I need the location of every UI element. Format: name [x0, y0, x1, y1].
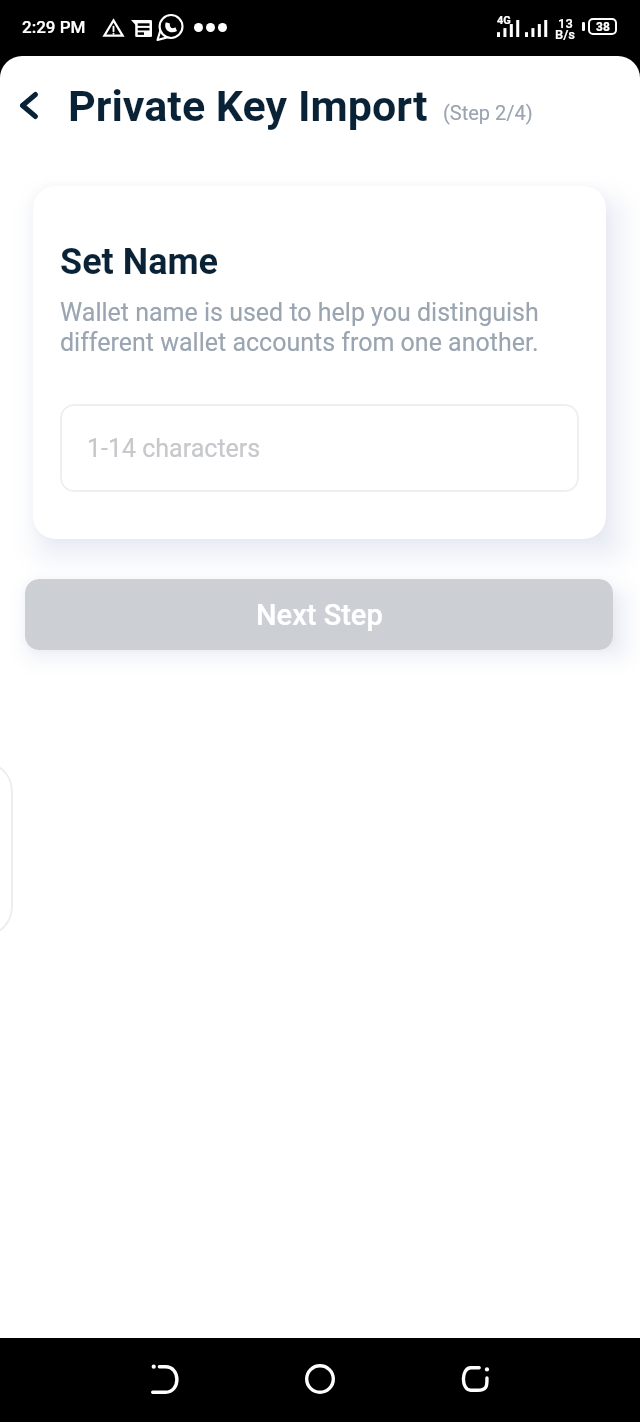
staticText: B/s [555, 27, 576, 42]
staticText: 1-14 characters [87, 434, 261, 463]
staticText: 38 [596, 20, 610, 34]
button[interactable]: Home [280, 1339, 360, 1419]
staticText: 2:29 PM [22, 17, 86, 37]
button[interactable]: Back [5, 81, 53, 129]
button[interactable]: Next Step [25, 579, 613, 650]
button[interactable]: Back [125, 1339, 205, 1419]
button[interactable]: 1-14 characters [60, 404, 579, 492]
staticText: Private Key Import [68, 81, 428, 131]
staticText: 13 [558, 16, 573, 31]
button[interactable]: Recent apps [435, 1339, 515, 1419]
staticText: 4G [497, 14, 511, 27]
staticText: Next Step [256, 598, 383, 632]
staticText: (Step 2/4) [443, 101, 533, 124]
staticText: Set Name [60, 241, 219, 283]
staticText: Wallet name is used to help you distingu… [60, 298, 539, 357]
